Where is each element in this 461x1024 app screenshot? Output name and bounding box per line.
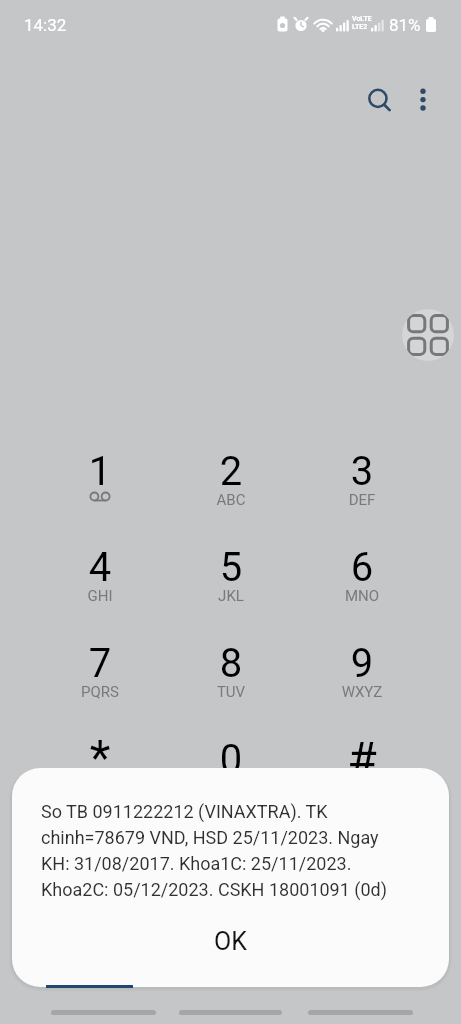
button[interactable]: * [41,730,159,818]
button[interactable]: 3 [303,442,421,530]
button[interactable]: 4 [41,538,159,626]
staticText: LTE2 [352,23,368,31]
button[interactable]: 2 [172,442,290,530]
staticText: * [41,729,159,785]
staticText: MNO [303,587,421,605]
staticText: So TB 0911222212 (VINAXTRA). TK chinh=78… [41,801,393,900]
staticText: 7 [41,640,159,687]
staticText: 8 [172,640,290,687]
staticText: 1 [41,448,159,495]
button[interactable]: # [303,730,421,818]
staticText: 14:32 [24,15,67,35]
button[interactable]: 8 [172,634,290,722]
button[interactable]: 0 [172,730,290,818]
staticText: ABC [172,491,290,509]
staticText: 9 [303,640,421,687]
button[interactable]: 7 [41,634,159,722]
staticText: PQRS [41,683,159,701]
staticText: 0 [172,736,290,783]
button[interactable]: Search [358,79,402,123]
staticText: JKL [172,587,290,605]
staticText: GHI [41,587,159,605]
button[interactable]: 9 [303,634,421,722]
button[interactable]: 5 [172,538,290,626]
staticText: 5 [172,544,290,591]
staticText: 2 [172,448,290,495]
button[interactable]: More options [401,78,445,122]
staticText: 6 [303,544,421,591]
staticText: 3 [303,448,421,495]
staticText: 81% [389,15,421,35]
button[interactable]: Dialpad options [402,309,454,361]
staticText: TUV [172,683,290,701]
button[interactable]: OK [12,912,449,970]
staticText: WXYZ [303,683,421,701]
staticText: 4 [41,544,159,591]
staticText: VoLTE [352,15,372,23]
staticText: # [303,731,421,787]
staticText: OK [214,927,247,956]
button[interactable]: 6 [303,538,421,626]
staticText: DEF [303,491,421,509]
button[interactable]: 1 [41,442,159,530]
